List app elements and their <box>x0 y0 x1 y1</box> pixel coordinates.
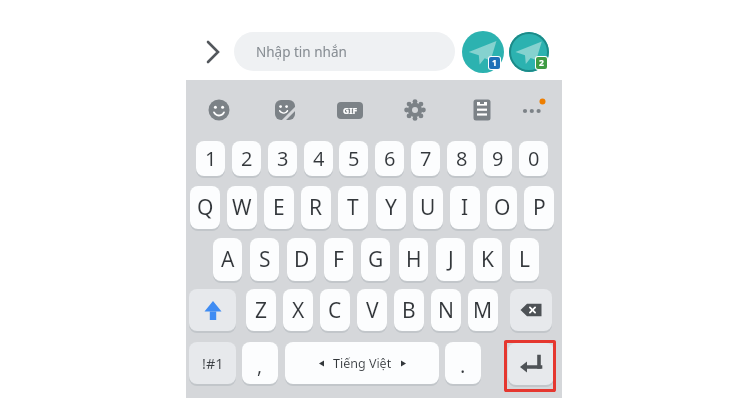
button[interactable]: 0 <box>519 141 548 176</box>
button[interactable] <box>509 32 549 72</box>
staticText: C <box>328 296 342 325</box>
button[interactable] <box>189 289 236 331</box>
button[interactable]: !#1 <box>189 342 236 384</box>
staticText: D <box>294 245 310 274</box>
staticText: W <box>232 193 252 222</box>
button[interactable]: D <box>287 238 316 281</box>
button[interactable]: T <box>338 186 368 229</box>
staticText: P <box>533 193 546 222</box>
button[interactable] <box>273 98 297 122</box>
button[interactable]: Y <box>376 186 406 229</box>
button[interactable] <box>403 98 427 122</box>
button[interactable]: V <box>357 289 387 331</box>
staticText: Y <box>385 193 397 222</box>
button[interactable] <box>519 95 549 125</box>
staticText: V <box>366 296 379 325</box>
button[interactable]: L <box>510 238 539 281</box>
button[interactable]: 1 <box>196 141 225 176</box>
staticText: Nhập tin nhắn <box>256 43 347 61</box>
button[interactable]: 3 <box>268 141 297 176</box>
staticText: S <box>259 245 271 274</box>
staticText: !#1 <box>202 353 224 373</box>
button[interactable] <box>510 289 552 331</box>
staticText: Tiếng Việt <box>333 355 392 372</box>
button[interactable]: 2 <box>232 141 261 176</box>
staticText: 6 <box>384 145 396 172</box>
staticText: 1 <box>205 145 217 172</box>
button[interactable]: 5 <box>339 141 368 176</box>
button[interactable]: GIF <box>337 102 363 119</box>
staticText: M <box>473 296 493 325</box>
button[interactable]: G <box>361 238 390 281</box>
button[interactable]: U <box>413 186 443 229</box>
button[interactable]: , <box>242 342 278 384</box>
staticText: I <box>461 193 469 222</box>
staticText: X <box>292 296 305 325</box>
staticText: 5 <box>348 145 360 172</box>
button[interactable]: K <box>473 238 502 281</box>
staticText: E <box>273 193 285 222</box>
staticText: , <box>257 353 263 379</box>
button[interactable]: 7 <box>411 141 440 176</box>
button[interactable]: E <box>264 186 294 229</box>
button[interactable]: M <box>468 289 498 331</box>
button[interactable]: 6 <box>375 141 404 176</box>
staticText: H <box>406 245 422 274</box>
staticText: 3 <box>277 145 289 172</box>
staticText: K <box>481 245 494 274</box>
staticText: 2 <box>241 145 253 172</box>
staticText: 7 <box>420 145 432 172</box>
staticText: F <box>333 245 344 274</box>
button[interactable]: O <box>487 186 517 229</box>
button[interactable]: A <box>213 238 242 281</box>
button[interactable]: H <box>399 238 428 281</box>
button[interactable] <box>462 31 504 73</box>
staticText: G <box>368 245 384 274</box>
button[interactable]: Nhập tin nhắn <box>234 32 455 71</box>
staticText: . <box>460 352 466 379</box>
button[interactable]: Z <box>246 289 276 331</box>
staticText: 2 <box>539 57 544 69</box>
button[interactable] <box>508 343 554 385</box>
staticText: R <box>309 193 323 222</box>
staticText: Q <box>197 193 214 222</box>
button[interactable]: N <box>431 289 461 331</box>
staticText: 9 <box>492 145 504 172</box>
button[interactable] <box>470 98 494 122</box>
button[interactable]: W <box>227 186 257 229</box>
staticText: U <box>420 193 436 222</box>
staticText: A <box>221 245 235 274</box>
staticText: Z <box>255 296 268 325</box>
staticText: N <box>438 296 454 325</box>
button[interactable]: Q <box>190 186 220 229</box>
staticText: L <box>519 245 531 274</box>
staticText: GIF <box>343 105 358 117</box>
button[interactable]: B <box>394 289 424 331</box>
staticText: 4 <box>313 145 325 172</box>
button[interactable]: J <box>436 238 465 281</box>
button[interactable]: X <box>283 289 313 331</box>
button[interactable] <box>207 98 231 122</box>
button[interactable]: I <box>450 186 480 229</box>
button[interactable]: 8 <box>447 141 476 176</box>
button[interactable]: F <box>324 238 353 281</box>
staticText: B <box>402 296 416 325</box>
staticText: 1 <box>492 57 497 69</box>
button[interactable]: Tiếng Việt <box>285 342 439 384</box>
button[interactable] <box>202 40 226 64</box>
staticText: J <box>448 245 454 274</box>
button[interactable]: C <box>320 289 350 331</box>
button[interactable]: . <box>445 342 481 384</box>
staticText: O <box>494 193 511 222</box>
button[interactable]: R <box>301 186 331 229</box>
button[interactable]: 9 <box>483 141 512 176</box>
staticText: 0 <box>528 145 540 172</box>
staticText: T <box>347 193 359 222</box>
staticText: 8 <box>456 145 468 172</box>
button[interactable]: S <box>250 238 279 281</box>
button[interactable]: P <box>524 186 554 229</box>
button[interactable]: 4 <box>304 141 333 176</box>
